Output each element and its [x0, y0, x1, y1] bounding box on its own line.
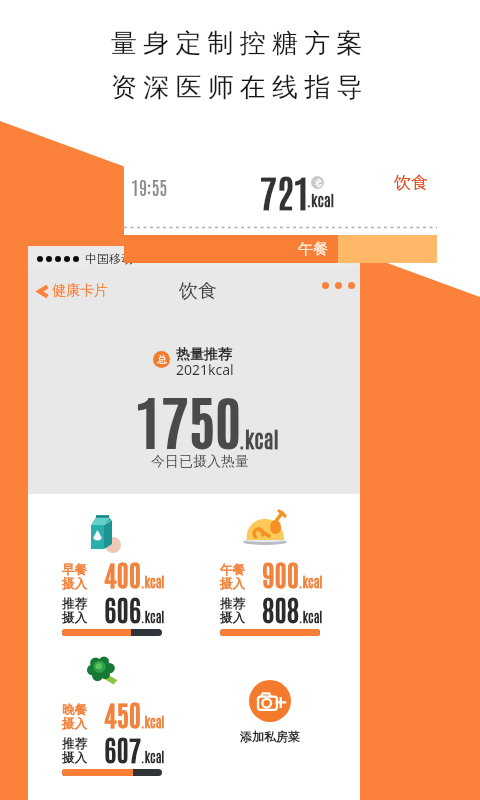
- staticText: 摄入: [62, 750, 87, 766]
- staticText: 450: [104, 696, 142, 732]
- staticText: 400: [104, 556, 142, 592]
- staticText: .kcal: [141, 608, 165, 625]
- button[interactable]: 晚餐: [62, 702, 202, 782]
- staticText: 早餐: [62, 562, 87, 578]
- staticText: 摄入: [220, 576, 245, 592]
- staticText: 健康卡片: [52, 282, 108, 300]
- staticText: 总: [157, 353, 167, 366]
- staticText: 808: [262, 591, 300, 627]
- button[interactable]: 饮食: [394, 172, 428, 193]
- staticText: 中国移动: [85, 251, 133, 266]
- staticText: .kcal: [299, 608, 323, 625]
- button[interactable]: 午餐: [220, 562, 360, 642]
- staticText: 摄入: [62, 716, 87, 732]
- staticText: 推荐: [220, 596, 245, 612]
- staticText: 606: [104, 591, 142, 627]
- staticText: 添加私房菜: [240, 729, 300, 744]
- staticText: 午餐: [298, 240, 328, 259]
- button[interactable]: More options: [318, 276, 363, 295]
- staticText: .kcal: [141, 713, 165, 730]
- button[interactable]: Add dish: [228, 670, 312, 754]
- staticText: .kcal: [239, 424, 279, 452]
- staticText: 资深医师在线指导: [111, 71, 369, 104]
- staticText: .kcal: [299, 573, 323, 590]
- staticText: 今日已摄入热量: [151, 453, 249, 471]
- staticText: 2021kcal: [176, 360, 234, 379]
- staticText: 1750: [135, 382, 242, 456]
- staticText: 饮食: [179, 279, 217, 303]
- staticText: 量身定制控糖方案: [111, 27, 369, 60]
- staticText: 摄入: [220, 610, 245, 626]
- staticText: 19:55: [131, 174, 168, 199]
- button[interactable]: 早餐: [62, 562, 202, 642]
- staticText: .kcal: [307, 190, 335, 209]
- staticText: 热量推荐: [176, 346, 232, 364]
- staticText: 721: [260, 167, 311, 215]
- staticText: 晚餐: [62, 702, 87, 718]
- staticText: 午餐: [220, 562, 245, 578]
- staticText: 900: [262, 556, 300, 592]
- staticText: 推荐: [62, 596, 87, 612]
- staticText: 推荐: [62, 736, 87, 752]
- staticText: 摄入: [62, 610, 87, 626]
- staticText: 607: [104, 731, 142, 767]
- staticText: .kcal: [141, 748, 165, 765]
- staticText: 摄入: [62, 576, 87, 592]
- staticText: .kcal: [141, 573, 165, 590]
- button[interactable]: 健康卡片: [30, 277, 114, 305]
